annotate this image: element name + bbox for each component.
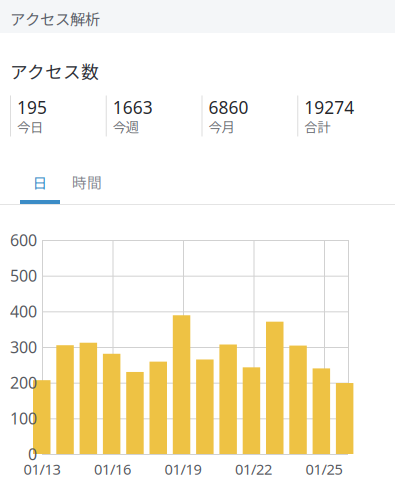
staticText: 300	[10, 336, 37, 358]
staticText: 19274	[304, 96, 354, 119]
staticText: 1663	[113, 96, 153, 119]
staticText: 400	[10, 301, 37, 322]
staticText: 01/19	[164, 459, 201, 479]
staticText: アクセス解析	[10, 7, 100, 30]
staticText: 01/22	[235, 459, 272, 479]
staticText: 今月	[208, 117, 234, 136]
staticText: 0	[28, 443, 37, 465]
staticText: 200	[10, 372, 37, 393]
staticText: 合計	[304, 117, 330, 136]
staticText: アクセス数	[10, 58, 99, 83]
staticText: 500	[10, 265, 37, 286]
staticText: 01/16	[94, 459, 131, 479]
button[interactable]: 日	[20, 173, 60, 204]
staticText: 日	[32, 171, 47, 193]
staticText: 600	[10, 229, 37, 251]
staticText: 01/25	[305, 459, 342, 479]
staticText: 01/13	[23, 459, 60, 479]
staticText: 今日	[17, 117, 43, 136]
staticText: 時間	[72, 171, 102, 193]
staticText: 195	[17, 96, 47, 119]
staticText: 6860	[208, 96, 248, 119]
staticText: 100	[10, 408, 37, 429]
staticText: 今週	[113, 117, 139, 136]
button[interactable]: 時間	[60, 173, 114, 204]
